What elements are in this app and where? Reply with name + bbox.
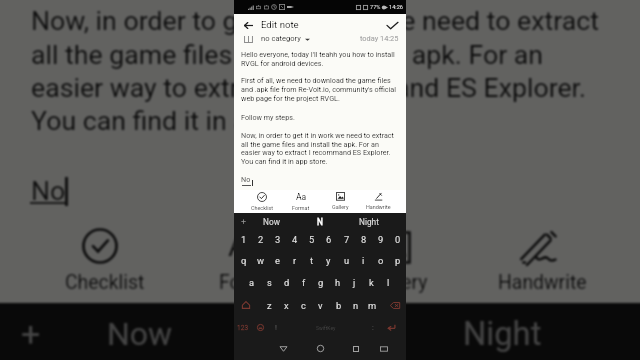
button[interactable]: Home <box>313 342 327 355</box>
staticText: Night <box>359 217 379 227</box>
button[interactable]: x <box>278 296 295 314</box>
staticText: RVGL for android devices. <box>241 59 324 67</box>
staticText: web page for the project RVGL. <box>241 94 340 102</box>
staticText: b <box>336 300 342 311</box>
button[interactable]: z <box>261 296 278 314</box>
button[interactable]: t <box>303 251 320 269</box>
staticText: r <box>293 255 297 266</box>
button[interactable]: y <box>320 251 337 269</box>
button[interactable]: 9 <box>372 230 389 248</box>
staticText: h <box>335 277 341 288</box>
staticText: Gallery <box>368 271 428 294</box>
button[interactable]: l <box>380 273 397 291</box>
button[interactable]: Night <box>349 215 389 229</box>
staticText: SwiftKey <box>316 325 336 331</box>
staticText: p <box>395 255 401 266</box>
staticText: 2 <box>258 234 264 245</box>
staticText: Handwrite <box>366 204 391 210</box>
staticText: z <box>267 300 272 311</box>
button[interactable]: g <box>312 273 329 291</box>
staticText: No <box>241 175 251 183</box>
staticText: 6 <box>326 234 332 245</box>
staticText: q <box>241 255 247 266</box>
button[interactable]: s <box>261 273 278 291</box>
button[interactable]: Add <box>236 215 251 229</box>
button[interactable]: Aa <box>282 190 320 213</box>
staticText: You can find it in app store. <box>241 157 328 165</box>
button[interactable]: Now <box>251 215 291 229</box>
button[interactable]: Emoji <box>253 321 267 334</box>
staticText: i <box>362 255 365 266</box>
button[interactable]: c <box>295 296 312 314</box>
button[interactable]: no category <box>261 34 310 43</box>
button[interactable]: 2 <box>252 230 269 248</box>
button[interactable]: a <box>243 273 260 291</box>
button[interactable]: m <box>364 296 381 314</box>
staticText: s <box>267 277 272 288</box>
button[interactable]: d <box>278 273 295 291</box>
staticText: Hello everyone, today I'll teahh you how… <box>241 50 395 58</box>
button[interactable]: u <box>338 251 355 269</box>
button[interactable]: 7 <box>338 230 355 248</box>
staticText: o <box>378 255 384 266</box>
staticText: 77% <box>370 4 381 11</box>
staticText: d <box>284 277 290 288</box>
button[interactable]: b <box>330 296 347 314</box>
button[interactable]: N <box>300 215 340 229</box>
button[interactable]: 4 <box>286 230 303 248</box>
button[interactable]: Shift <box>239 299 253 311</box>
staticText: l <box>387 277 390 288</box>
button[interactable]: Handwrite <box>359 190 397 213</box>
staticText: Gallery <box>332 204 349 210</box>
button[interactable]: SwiftKey <box>306 321 346 334</box>
staticText: no category <box>261 34 301 43</box>
staticText: First of all, we need to download the ga… <box>241 76 391 84</box>
staticText: Now <box>107 315 173 353</box>
button[interactable]: Gallery <box>321 190 359 213</box>
staticText: Aa <box>296 192 306 202</box>
button[interactable]: Enter <box>383 321 399 334</box>
button[interactable]: Hide keyboard <box>377 342 391 355</box>
button[interactable]: r <box>286 251 303 269</box>
button[interactable]: e <box>269 251 286 269</box>
staticText: Checklist <box>65 271 145 294</box>
staticText: Now, in order to get it in work we need … <box>31 5 599 36</box>
button[interactable]: n <box>347 296 364 314</box>
button[interactable]: ! <box>269 321 283 334</box>
staticText: Checklist <box>251 205 274 211</box>
staticText: e <box>275 255 280 266</box>
button[interactable]: o <box>372 251 389 269</box>
button[interactable]: Recent apps <box>349 342 363 355</box>
button[interactable]: p <box>389 251 406 269</box>
button[interactable]: 3 <box>269 230 286 248</box>
staticText: You can find it in app store. <box>31 105 353 136</box>
button[interactable]: 1 <box>235 230 252 248</box>
staticText: 5 <box>309 234 315 245</box>
button[interactable]: 5 <box>303 230 320 248</box>
button[interactable]: j <box>346 273 363 291</box>
staticText: 9 <box>378 234 384 245</box>
button[interactable]: Save note <box>382 16 402 34</box>
button[interactable]: Checklist <box>243 190 281 213</box>
button[interactable]: Navigate back <box>238 16 258 34</box>
staticText: ! <box>275 323 277 332</box>
staticText: + <box>241 217 247 228</box>
staticText: 4 <box>292 234 298 245</box>
button[interactable]: v <box>312 296 329 314</box>
button[interactable]: Backspace <box>388 299 402 311</box>
button[interactable]: f <box>295 273 312 291</box>
staticText: Night <box>463 315 542 353</box>
staticText: N <box>317 217 323 227</box>
button[interactable]: k <box>363 273 380 291</box>
button[interactable]: h <box>329 273 346 291</box>
button[interactable]: 8 <box>355 230 372 248</box>
button[interactable]: w <box>252 251 269 269</box>
button[interactable]: i <box>355 251 372 269</box>
staticText: all the game files and install the apk. … <box>241 140 379 148</box>
button[interactable]: q <box>235 251 252 269</box>
button[interactable]: Back <box>276 342 290 355</box>
button[interactable]: 6 <box>320 230 337 248</box>
button[interactable]: 0 <box>389 230 406 248</box>
button[interactable]: 123 <box>235 321 251 334</box>
